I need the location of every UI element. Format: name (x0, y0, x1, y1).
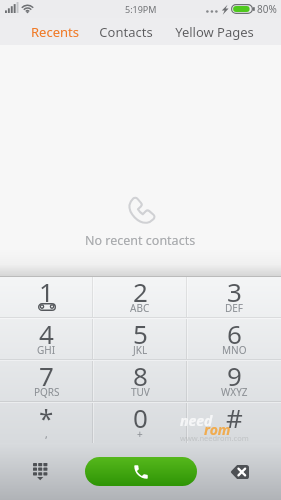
staticText: 8 (133, 358, 148, 393)
button[interactable]: Show keypad (23, 455, 57, 489)
button[interactable]: 8 (93, 361, 187, 401)
staticText: need (180, 411, 213, 430)
staticText: GHI (37, 343, 56, 357)
staticText: DEF (225, 301, 244, 315)
staticText: 6 (227, 316, 242, 351)
button[interactable]: 3 (187, 277, 281, 317)
staticText: 5:19PM (125, 3, 157, 15)
staticText: Yellow Pages (175, 23, 254, 41)
button[interactable]: 2 (93, 277, 187, 317)
staticText: 80% (257, 2, 277, 16)
staticText: www.needrom.com (180, 433, 249, 443)
staticText: 4 (39, 316, 54, 351)
staticText: WXYZ (221, 385, 248, 399)
staticText: # (226, 400, 243, 435)
staticText: No recent contacts (85, 232, 196, 249)
staticText: 9 (227, 358, 242, 393)
staticText: , (45, 427, 48, 441)
button[interactable]: Call (85, 457, 197, 486)
staticText: 1 (39, 274, 54, 309)
staticText: 5 (133, 316, 148, 351)
button[interactable]: Yellow Pages (161, 18, 268, 45)
staticText: 7 (39, 358, 54, 393)
button[interactable]: * (0, 403, 93, 443)
button[interactable]: Contacts (90, 18, 161, 45)
staticText: JKL (133, 343, 148, 357)
button[interactable]: Backspace (223, 456, 255, 488)
staticText: TUV (131, 385, 150, 399)
staticText: MNO (222, 343, 247, 357)
button[interactable]: # (187, 403, 281, 443)
staticText: 2 (133, 274, 148, 309)
button[interactable]: 0 (93, 403, 187, 443)
staticText: + (137, 427, 143, 441)
button[interactable]: 5 (93, 319, 187, 359)
button[interactable]: 6 (187, 319, 281, 359)
staticText: * (39, 400, 54, 435)
button[interactable]: 4 (0, 319, 93, 359)
staticText: Contacts (99, 23, 153, 41)
staticText: Recents (31, 23, 79, 41)
staticText: 3 (227, 274, 242, 309)
button[interactable]: 1 (0, 277, 93, 317)
staticText: ABC (130, 301, 150, 315)
button[interactable]: Recents (0, 18, 109, 45)
button[interactable]: 7 (0, 361, 93, 401)
staticText: 0 (133, 400, 148, 435)
staticText: rom (204, 420, 231, 439)
staticText: PQRS (34, 385, 60, 399)
button[interactable]: 9 (187, 361, 281, 401)
